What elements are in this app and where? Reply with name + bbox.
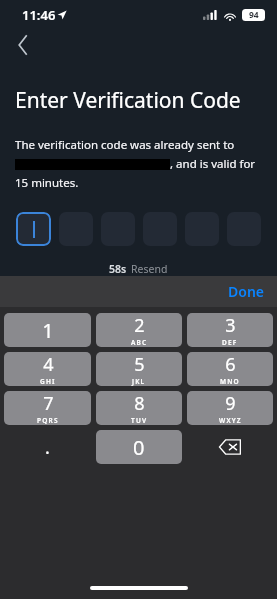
button[interactable]: 9 bbox=[187, 391, 273, 425]
button[interactable]: Period bbox=[4, 430, 91, 464]
staticText: 3 bbox=[225, 313, 236, 338]
staticText: Done bbox=[228, 282, 265, 301]
button[interactable]: Code digit 1 bbox=[16, 212, 51, 246]
staticText: 15 minutes. bbox=[15, 175, 79, 191]
staticText: . bbox=[45, 435, 50, 460]
staticText: 1 bbox=[42, 317, 54, 344]
button[interactable]: 0 bbox=[96, 430, 182, 464]
button[interactable]: 1 bbox=[4, 313, 91, 347]
button[interactable]: Back bbox=[6, 30, 40, 60]
staticText: 94 bbox=[249, 9, 259, 21]
staticText: 5 bbox=[134, 352, 145, 377]
staticText: The verification code was already sent t… bbox=[15, 137, 235, 153]
button[interactable]: Done bbox=[216, 278, 277, 305]
button[interactable]: 6 bbox=[187, 352, 273, 386]
staticText: , and is valid for bbox=[170, 156, 256, 172]
button[interactable]: 2 bbox=[96, 313, 182, 347]
button[interactable]: 4 bbox=[4, 352, 91, 386]
staticText: 9 bbox=[225, 391, 236, 416]
staticText: 6 bbox=[225, 352, 236, 377]
button[interactable]: Resend bbox=[131, 262, 168, 276]
staticText: ABC bbox=[131, 338, 148, 347]
button[interactable]: Backspace bbox=[187, 430, 273, 464]
staticText: Enter Verification Code bbox=[15, 86, 241, 115]
staticText: 58s bbox=[109, 262, 127, 276]
staticText: 0 bbox=[133, 434, 145, 461]
staticText: DEF bbox=[222, 338, 238, 347]
staticText: WXYZ bbox=[219, 416, 242, 425]
staticText: 2 bbox=[134, 313, 145, 338]
staticText: 11:46 bbox=[22, 6, 56, 24]
staticText: 8 bbox=[134, 391, 145, 416]
button[interactable]: 8 bbox=[96, 391, 182, 425]
staticText: 4 bbox=[43, 352, 54, 377]
staticText: GHI bbox=[40, 377, 56, 386]
staticText: MNO bbox=[220, 377, 240, 386]
staticText: 7 bbox=[43, 391, 54, 416]
button[interactable]: 7 bbox=[4, 391, 91, 425]
staticText: PQRS bbox=[37, 416, 59, 425]
staticText: JKL bbox=[132, 377, 146, 386]
button[interactable]: 3 bbox=[187, 313, 273, 347]
button[interactable]: 5 bbox=[96, 352, 182, 386]
staticText: Resend bbox=[131, 262, 168, 276]
staticText: TUV bbox=[131, 416, 148, 425]
